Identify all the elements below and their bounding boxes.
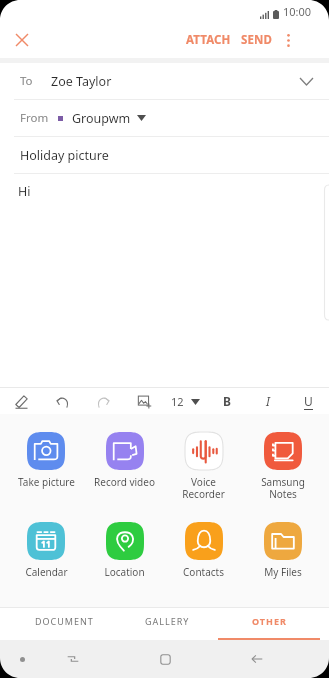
staticText: 12	[171, 394, 184, 409]
button[interactable]: Samsung Notes	[243, 432, 322, 501]
staticText: ATTACH	[186, 32, 231, 48]
button[interactable]: Insert image	[124, 388, 165, 414]
staticText: Record video	[94, 475, 155, 489]
staticText: Take picture	[18, 475, 75, 489]
staticText: SEND	[241, 32, 272, 48]
button[interactable]: I	[247, 388, 288, 414]
staticText: 10:00	[283, 4, 312, 19]
staticText: From	[20, 110, 49, 126]
staticText: GALLERY	[145, 615, 190, 627]
button[interactable]: ATTACH	[181, 24, 236, 56]
button[interactable]: Take picture	[7, 432, 85, 489]
button[interactable]: Contacts	[164, 522, 243, 579]
staticText: Location	[104, 565, 145, 579]
staticText: Contacts	[183, 565, 224, 579]
button[interactable]: DOCUMENT	[13, 608, 116, 640]
button[interactable]: OTHER	[218, 608, 320, 640]
staticText: I	[266, 393, 270, 409]
staticText: Samsung Notes	[261, 475, 305, 501]
staticText: OTHER	[252, 615, 287, 627]
button[interactable]: My Files	[243, 522, 322, 579]
staticText: DOCUMENT	[35, 615, 94, 627]
button[interactable]: Calendar	[7, 522, 85, 579]
button[interactable]: From	[0, 100, 329, 136]
staticText: Hi	[18, 183, 31, 200]
staticText: Zoe Taylor	[51, 73, 112, 90]
button[interactable]: Redo	[83, 388, 124, 414]
staticText: My Files	[264, 565, 302, 579]
button[interactable]: To	[0, 63, 329, 99]
button[interactable]: 12	[165, 388, 206, 414]
button[interactable]: Back	[211, 640, 303, 678]
staticText: To	[20, 73, 33, 89]
button[interactable]: Handwriting	[0, 388, 42, 414]
staticText: Holiday picture	[20, 147, 109, 164]
staticText: B	[223, 393, 231, 409]
button[interactable]: SEND	[236, 24, 277, 56]
button[interactable]: Record video	[85, 432, 164, 489]
button[interactable]: U	[288, 388, 329, 414]
button[interactable]: Undo	[42, 388, 83, 414]
staticText: Groupwm	[72, 110, 131, 127]
staticText: Voice Recorder	[182, 475, 225, 501]
button[interactable]: Voice Recorder	[164, 432, 243, 501]
staticText: U	[304, 393, 313, 409]
button[interactable]: Recents	[26, 640, 119, 678]
button[interactable]: Home	[119, 640, 211, 678]
button[interactable]: More options	[277, 23, 299, 57]
button[interactable]: B	[206, 388, 247, 414]
button[interactable]: Location	[85, 522, 164, 579]
button[interactable]: GALLERY	[116, 608, 218, 640]
staticText: Calendar	[25, 565, 68, 579]
button[interactable]: Close	[6, 24, 38, 56]
button[interactable]: Holiday picture	[0, 137, 329, 173]
